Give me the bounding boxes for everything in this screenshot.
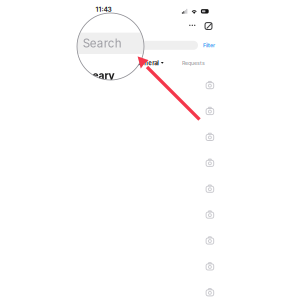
staticText: 11:43 [96, 5, 112, 13]
button[interactable] [80, 175, 220, 201]
staticText: Search [86, 42, 104, 49]
staticText: Search [83, 36, 122, 50]
button[interactable]: New message [203, 20, 214, 31]
staticText: Filter [203, 42, 215, 49]
staticText: General [136, 59, 159, 67]
button[interactable] [80, 253, 220, 279]
button[interactable] [80, 124, 220, 149]
staticText: Requests [182, 60, 205, 66]
button[interactable]: Requests [175, 57, 211, 68]
button[interactable] [80, 98, 220, 124]
button[interactable]: Filter [200, 40, 218, 50]
button[interactable]: General [132, 57, 168, 68]
button[interactable] [80, 201, 220, 227]
button[interactable] [80, 150, 220, 175]
button[interactable] [80, 72, 220, 98]
button[interactable]: More options [187, 20, 198, 31]
button[interactable] [80, 227, 220, 253]
button[interactable] [80, 279, 220, 300]
staticText: eary [92, 69, 114, 82]
